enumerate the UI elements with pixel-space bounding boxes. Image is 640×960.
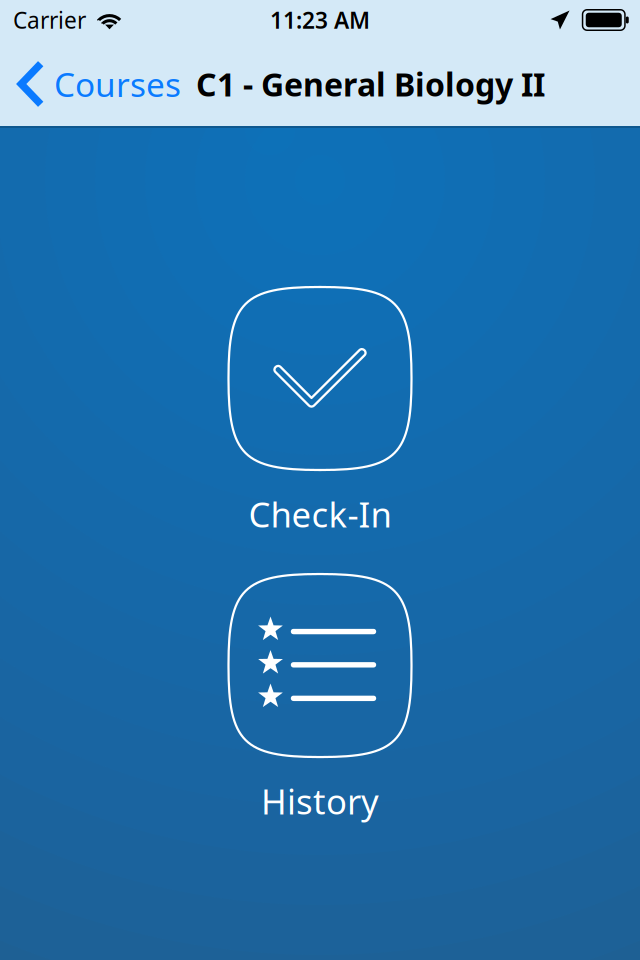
button[interactable]: Courses bbox=[0, 40, 196, 128]
staticText: Carrier bbox=[13, 5, 86, 35]
button[interactable]: History bbox=[228, 574, 411, 824]
staticText: Courses bbox=[54, 62, 181, 106]
staticText: Check-In bbox=[248, 491, 391, 537]
staticText: History bbox=[261, 778, 379, 824]
staticText: C1 - General Biology II bbox=[196, 63, 545, 105]
button[interactable]: Check-In bbox=[228, 287, 411, 537]
staticText: 11:23 AM bbox=[270, 5, 370, 35]
